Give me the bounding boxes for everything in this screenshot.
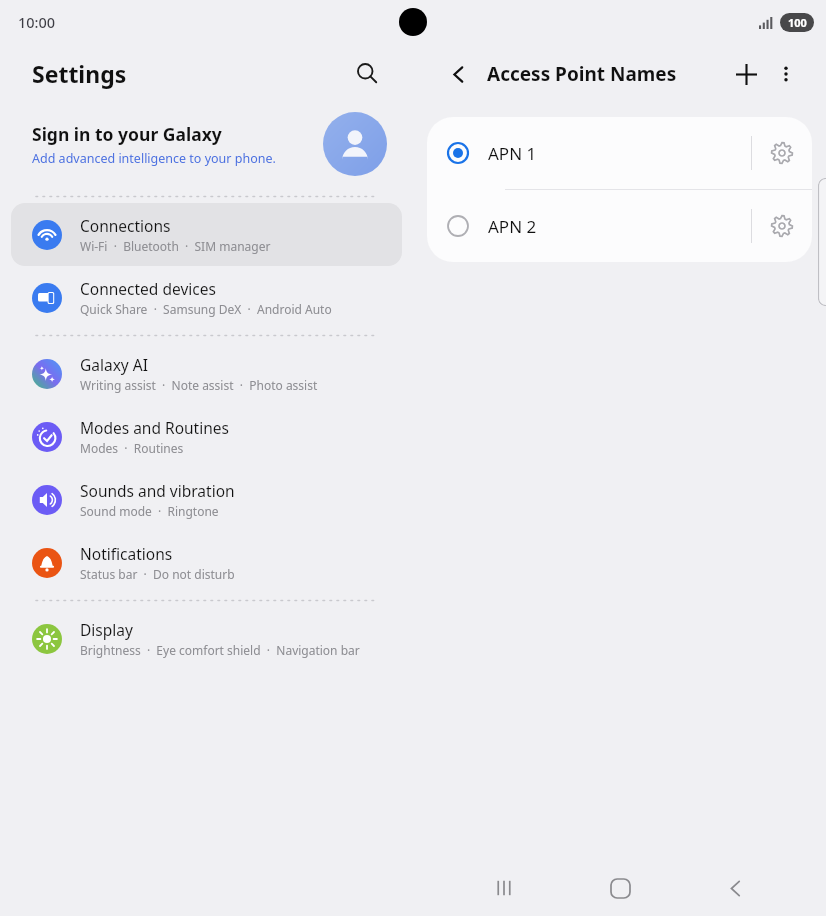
button[interactable]: Edge panel (818, 178, 826, 306)
staticText: Writing assist · Note assist · Photo ass… (80, 377, 318, 393)
staticText: Modes and Routines (80, 417, 229, 438)
button[interactable]: APN 2 (427, 190, 812, 262)
button[interactable]: Edit APN 2 settings (752, 190, 812, 262)
staticText: 100 (788, 15, 807, 30)
staticText: Sound mode · Ringtone (80, 503, 219, 519)
staticText: Sounds and vibration (80, 480, 235, 501)
staticText: Display (80, 619, 133, 640)
staticText: Add advanced intelligence to your phone. (32, 150, 276, 167)
staticText: APN 2 (488, 215, 751, 238)
staticText: Modes · Routines (80, 440, 184, 456)
button[interactable]: APN 1 (427, 117, 812, 189)
staticText: APN 1 (488, 142, 751, 165)
button[interactable]: Sign in to your Galaxy (0, 102, 413, 190)
staticText: Galaxy AI (80, 354, 148, 375)
button[interactable]: Back (439, 55, 477, 93)
staticText: Wi-Fi · Bluetooth · SIM manager (80, 238, 271, 254)
button[interactable]: Add (726, 54, 766, 94)
staticText: 10:00 (18, 12, 56, 32)
button[interactable]: More options (766, 54, 806, 94)
staticText: Connected devices (80, 278, 216, 299)
staticText: Notifications (80, 543, 173, 564)
staticText: Sign in to your Galaxy (32, 122, 222, 146)
button[interactable]: Display (0, 607, 413, 670)
button[interactable]: Modes and Routines (0, 405, 413, 468)
staticText: Access Point Names (487, 61, 726, 87)
button[interactable]: Home (595, 863, 645, 913)
staticText: Status bar · Do not disturb (80, 566, 235, 582)
staticText: Connections (80, 215, 171, 236)
staticText: Quick Share · Samsung DeX · Android Auto (80, 301, 332, 317)
button[interactable]: Connected devices (0, 266, 413, 329)
button[interactable]: Connections (11, 203, 402, 266)
button[interactable]: Sounds and vibration (0, 468, 413, 531)
staticText: Settings (32, 58, 127, 89)
button[interactable]: Search (347, 53, 387, 93)
button[interactable]: Back (710, 863, 760, 913)
staticText: Brightness · Eye comfort shield · Naviga… (80, 642, 380, 658)
button[interactable]: Galaxy AI (0, 342, 413, 405)
button[interactable]: Edit APN 1 settings (752, 117, 812, 189)
button[interactable]: Recents (479, 863, 529, 913)
button[interactable]: Notifications (0, 531, 413, 594)
